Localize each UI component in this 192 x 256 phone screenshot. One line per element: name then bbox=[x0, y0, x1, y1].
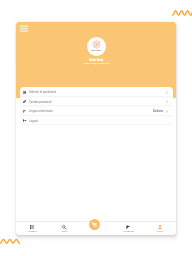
button[interactable]: Profilo bbox=[144, 222, 176, 235]
button[interactable]: In Offerta bbox=[112, 222, 144, 235]
staticText: Profilo bbox=[156, 230, 164, 233]
staticText: Indirizzi di spedizione bbox=[29, 90, 57, 94]
button[interactable]: Prodotti bbox=[16, 222, 48, 235]
staticText: frescobio bbox=[91, 49, 102, 52]
button[interactable]: Cambia password bbox=[20, 97, 173, 106]
staticText: mario.rossi@gmail.com bbox=[83, 61, 110, 64]
staticText: Logout bbox=[29, 119, 38, 123]
button[interactable]: Carrello bbox=[89, 219, 100, 230]
staticText: Italiano bbox=[153, 109, 164, 113]
staticText: Cambia password bbox=[29, 100, 52, 104]
button[interactable]: Lingua selezionata bbox=[20, 106, 173, 116]
staticText: Prodotti bbox=[28, 230, 37, 233]
button[interactable]: Indirizzi di spedizione bbox=[20, 87, 173, 97]
staticText: Lingua selezionata bbox=[29, 109, 53, 113]
staticText: Mario Rossi bbox=[89, 58, 104, 61]
button[interactable]: Menu bbox=[20, 25, 28, 32]
button[interactable]: Cerca bbox=[48, 222, 80, 235]
staticText: Cerca bbox=[61, 230, 68, 233]
button[interactable]: Logout bbox=[20, 116, 173, 125]
staticText: In Offerta bbox=[123, 230, 134, 233]
